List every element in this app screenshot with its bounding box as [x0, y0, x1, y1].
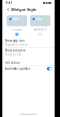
staticText: Show progress: [5, 49, 25, 52]
staticText: Tint colour: [5, 61, 20, 64]
staticText: Compact: [11, 28, 22, 31]
button[interactable]: Compact: [7, 15, 27, 36]
staticText: 9:41: [6, 1, 13, 5]
button[interactable]: Expanded: [30, 15, 50, 36]
staticText: Display in corner: [5, 43, 28, 46]
staticText: Ring or bar: [5, 53, 21, 56]
button[interactable]: Show progress: [2, 48, 55, 57]
staticText: Automatic updates: [5, 67, 30, 70]
staticText: Widget Style: [11, 7, 36, 12]
staticText: Show app icon: [5, 39, 25, 42]
button[interactable]: Tint colour: [2, 60, 55, 65]
staticText: Expanded: [34, 28, 47, 31]
button[interactable]: Back: [6, 8, 10, 11]
button[interactable]: Automatic updates: [2, 66, 55, 72]
button[interactable]: Show app icon: [2, 38, 55, 47]
